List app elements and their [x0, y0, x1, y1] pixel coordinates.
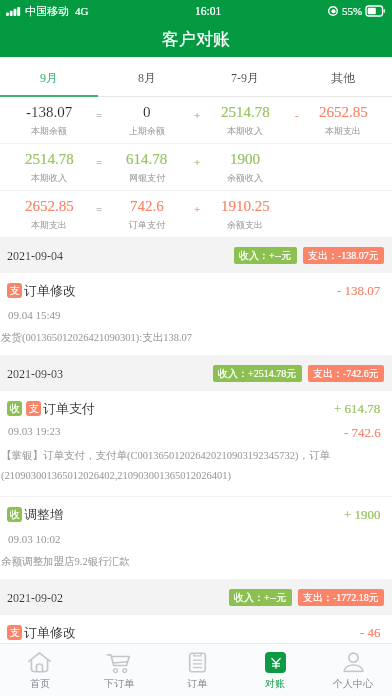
staticText: 16:01: [195, 5, 222, 18]
staticText: 7-9月: [231, 70, 259, 85]
staticText: 支出：-138.07元: [308, 249, 379, 262]
staticText: 2021-09-04: [7, 249, 63, 262]
staticText: 首页: [30, 677, 50, 690]
staticText: 收: [10, 402, 20, 415]
staticText: 对账: [265, 677, 285, 690]
staticText: 余额支出: [227, 219, 263, 230]
staticText: - 46: [360, 625, 381, 639]
staticText: 614.78: [126, 151, 168, 168]
staticText: 【掌银】订单支付，支付单(C00136501202642021090319234…: [1, 449, 330, 462]
button[interactable]: 收: [0, 497, 392, 579]
staticText: (210903001365012026402,21090300136501202…: [1, 470, 232, 482]
staticText: 收入：+--元: [239, 249, 292, 262]
staticText: 本期收入: [227, 125, 263, 136]
button[interactable]: 支: [0, 615, 392, 643]
staticText: 收: [10, 508, 20, 521]
staticText: 客户对账: [162, 29, 230, 50]
staticText: 订单: [187, 677, 207, 690]
staticText: + 614.78: [334, 401, 381, 415]
staticText: =: [96, 156, 103, 168]
button[interactable]: 8月: [98, 57, 196, 97]
staticText: 0: [143, 104, 151, 121]
staticText: 2652.85: [319, 104, 368, 121]
staticText: =: [96, 109, 103, 121]
staticText: 收入：+2514.78元: [218, 367, 297, 380]
staticText: 09.03 19:23: [8, 425, 61, 437]
staticText: 2514.78: [221, 104, 270, 121]
button[interactable]: 支: [0, 273, 392, 355]
staticText: 下订单: [104, 677, 134, 690]
staticText: 2021-09-03: [7, 367, 63, 380]
staticText: 支: [10, 626, 20, 639]
staticText: 55%: [342, 5, 363, 17]
staticText: +: [194, 109, 201, 121]
staticText: 其他: [331, 70, 355, 85]
staticText: 本期收入: [31, 172, 67, 183]
button[interactable]: 其他: [294, 57, 392, 97]
staticText: 2021-09-02: [7, 591, 63, 604]
staticText: 本期余额: [31, 125, 67, 136]
staticText: +: [194, 156, 201, 168]
staticText: 09.03 10:02: [8, 533, 61, 545]
button[interactable]: 个人中心: [314, 644, 392, 696]
button[interactable]: 首页: [0, 644, 79, 696]
staticText: 网银支付: [129, 172, 165, 183]
staticText: 中国移动: [25, 4, 69, 18]
staticText: 个人中心: [333, 677, 373, 690]
staticText: 1900: [230, 151, 260, 168]
staticText: 支出：-1772.18元: [303, 591, 379, 604]
staticText: 1910.25: [221, 198, 270, 215]
staticText: 发货(001365012026421090301):支出138.07: [1, 331, 193, 344]
staticText: -: [295, 109, 299, 121]
staticText: 本期支出: [325, 125, 361, 136]
staticText: 支: [29, 402, 39, 415]
staticText: 2514.78: [25, 151, 74, 168]
staticText: 上期余额: [129, 125, 165, 136]
staticText: 调整增: [24, 506, 63, 522]
button[interactable]: 订单: [158, 644, 236, 696]
staticText: 订单修改: [24, 624, 76, 640]
staticText: - 742.6: [344, 425, 381, 439]
button[interactable]: 7-9月: [196, 57, 294, 97]
staticText: =: [96, 203, 103, 215]
staticText: 订单修改: [24, 282, 76, 298]
staticText: + 1900: [344, 507, 381, 521]
button[interactable]: 下订单: [79, 644, 158, 696]
staticText: 本期支出: [31, 219, 67, 230]
button[interactable]: 对账: [236, 644, 314, 696]
staticText: 4G: [75, 5, 89, 17]
staticText: - 138.07: [337, 283, 381, 297]
button[interactable]: 收: [0, 391, 392, 497]
staticText: 742.6: [130, 198, 164, 215]
staticText: 8月: [138, 70, 156, 85]
staticText: 2652.85: [25, 198, 74, 215]
staticText: 支出：-742.6元: [313, 367, 379, 380]
staticText: 09.04 15:49: [8, 309, 61, 321]
staticText: 订单支付: [43, 400, 95, 416]
staticText: 订单支付: [129, 219, 165, 230]
staticText: -138.07: [26, 104, 73, 121]
staticText: 收入：+--元: [234, 591, 287, 604]
staticText: 9月: [40, 70, 58, 85]
staticText: 支: [10, 284, 20, 297]
staticText: +: [194, 203, 201, 215]
staticText: 余额收入: [227, 172, 263, 183]
button[interactable]: 9月: [0, 57, 98, 97]
staticText: 余额调整加盟店9.2银行汇款: [1, 555, 130, 568]
